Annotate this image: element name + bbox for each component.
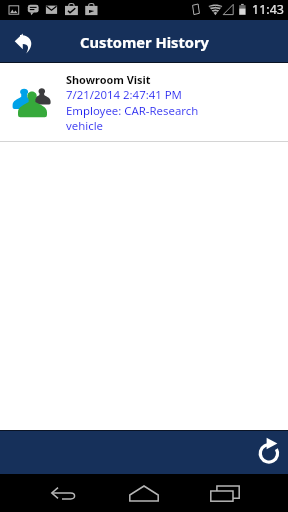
- button[interactable]: Home: [116, 474, 172, 512]
- button[interactable]: Back: [36, 474, 92, 512]
- staticText: Showroom Visit: [66, 72, 151, 87]
- staticText: Customer History: [80, 32, 209, 52]
- staticText: Employee: CAR-Research vehicle: [66, 103, 216, 133]
- staticText: 7/21/2014 2:47:41 PM: [66, 87, 182, 103]
- button[interactable]: Refresh: [244, 430, 288, 474]
- staticText: 11:43: [252, 1, 284, 18]
- button[interactable]: Showroom Visit: [0, 63, 288, 142]
- button[interactable]: Back: [0, 21, 46, 63]
- button[interactable]: Recent apps: [197, 474, 253, 512]
